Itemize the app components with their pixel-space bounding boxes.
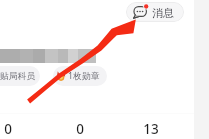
button[interactable]: 0 bbox=[60, 119, 100, 138]
button[interactable]: 0 bbox=[0, 119, 28, 138]
staticText: 0 bbox=[4, 120, 12, 138]
staticText: 吧贴局科员 bbox=[0, 71, 35, 82]
staticText: 13 bbox=[143, 120, 159, 138]
staticText: 消息 bbox=[152, 6, 174, 20]
button[interactable]: 13 bbox=[131, 119, 171, 138]
button[interactable]: 1枚勋章 bbox=[53, 66, 107, 86]
staticText: 1枚勋章 bbox=[68, 70, 100, 82]
staticText: 0 bbox=[76, 120, 84, 138]
button[interactable]: 吧贴局科员 bbox=[0, 66, 40, 86]
button[interactable]: Messages bbox=[126, 2, 184, 22]
